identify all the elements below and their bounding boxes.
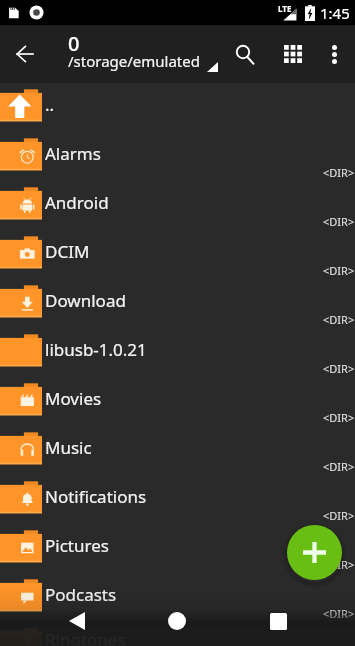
- staticText: Movies: [45, 387, 102, 410]
- staticText: <DIR>: [323, 263, 355, 278]
- staticText: Music: [45, 436, 92, 459]
- staticText: <DIR>: [323, 312, 355, 327]
- staticText: <DIR>: [323, 361, 355, 376]
- button[interactable]: Music: [0, 426, 355, 475]
- button[interactable]: Home: [157, 601, 197, 641]
- staticText: ..: [45, 93, 55, 116]
- staticText: Android: [45, 191, 109, 214]
- staticText: <DIR>: [323, 606, 355, 621]
- button[interactable]: Download: [0, 279, 355, 328]
- staticText: 0: [68, 30, 80, 57]
- button[interactable]: Add: [287, 525, 342, 580]
- staticText: Download: [45, 289, 126, 312]
- button[interactable]: More options: [312, 32, 355, 76]
- button[interactable]: Back: [5, 34, 45, 74]
- staticText: Alarms: [45, 142, 101, 165]
- button[interactable]: ..: [0, 83, 355, 132]
- button[interactable]: Podcasts: [0, 573, 355, 622]
- staticText: <DIR>: [323, 459, 355, 474]
- button[interactable]: Grid view: [271, 32, 315, 76]
- staticText: <DIR>: [323, 508, 355, 523]
- staticText: <DIR>: [323, 214, 355, 229]
- staticText: <DIR>: [323, 557, 355, 572]
- button[interactable]: Pictures: [0, 524, 355, 573]
- button[interactable]: Recents: [258, 601, 298, 641]
- button[interactable]: Ringtones: [0, 622, 355, 646]
- button[interactable]: libusb-1.0.21: [0, 328, 355, 377]
- button[interactable]: Back: [57, 601, 97, 641]
- staticText: libusb-1.0.21: [45, 338, 147, 361]
- button[interactable]: Android: [0, 181, 355, 230]
- staticText: LTE: [278, 3, 292, 14]
- staticText: Pictures: [45, 534, 109, 557]
- button[interactable]: Notifications: [0, 475, 355, 524]
- staticText: Notifications: [45, 485, 147, 508]
- staticText: Podcasts: [45, 583, 117, 606]
- button[interactable]: Movies: [0, 377, 355, 426]
- button[interactable]: Search: [223, 32, 267, 76]
- staticText: DCIM: [45, 240, 90, 263]
- staticText: Ringtones: [45, 628, 126, 646]
- staticText: 1:45: [320, 3, 350, 23]
- button[interactable]: DCIM: [0, 230, 355, 279]
- staticText: /storage/emulated: [68, 51, 200, 71]
- staticText: <DIR>: [323, 410, 355, 425]
- staticText: <DIR>: [323, 165, 355, 180]
- button[interactable]: Alarms: [0, 132, 355, 181]
